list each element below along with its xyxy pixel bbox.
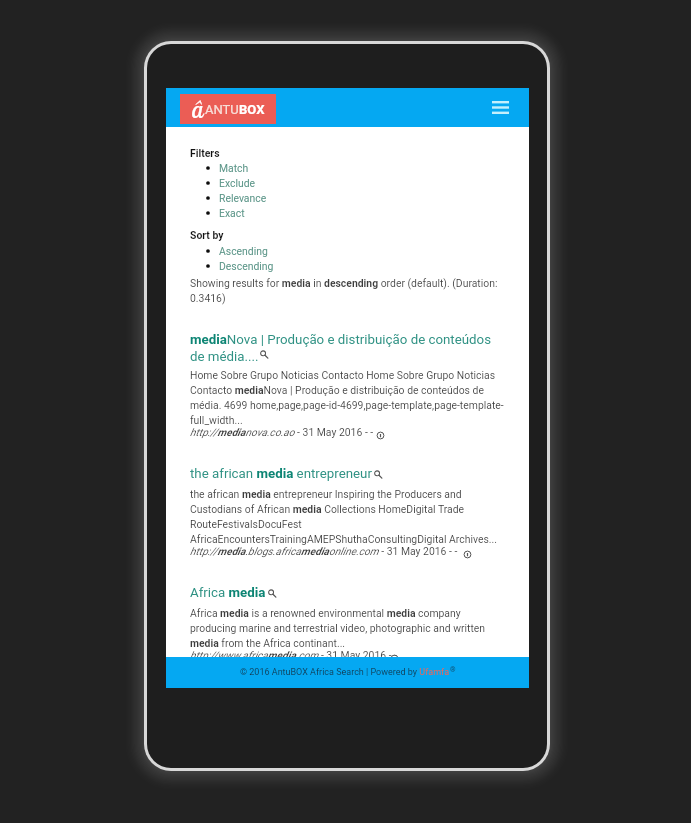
button[interactable]: Africa media	[190, 585, 505, 661]
staticText: http://www.africamedia.com - 31 May 2016…	[190, 649, 397, 661]
staticText: Filters	[190, 147, 220, 159]
staticText: Descending	[219, 260, 274, 272]
button[interactable]: Menu	[486, 93, 516, 123]
staticText: Africa media is a renowned environmental…	[190, 607, 505, 649]
staticText: Match	[219, 162, 249, 174]
staticText: Exact	[219, 207, 245, 219]
staticText: the african media entrepreneur	[190, 466, 372, 482]
staticText: Africa media	[190, 585, 266, 601]
staticText: ANTU	[205, 102, 239, 117]
button[interactable]: Exact	[190, 205, 505, 220]
staticText: Exclude	[219, 177, 256, 189]
staticText: Sort by	[190, 229, 224, 241]
staticText: the african media entrepreneur Inspiring…	[190, 488, 505, 545]
staticText: â	[192, 95, 204, 124]
button[interactable]: © 2016 AntuBOX Africa Search | Powered b…	[166, 657, 529, 688]
button[interactable]: Descending	[190, 258, 505, 273]
staticText: mediaNova | Produção e distribuição de c…	[190, 332, 505, 364]
staticText: Ascending	[219, 245, 268, 257]
staticText: BOX	[239, 102, 265, 117]
staticText: http://medianova.co.ao - 31 May 2016 - -	[190, 426, 374, 438]
button[interactable]: â	[180, 94, 276, 124]
staticText: Showing results for media in descending …	[190, 277, 505, 304]
button[interactable]: mediaNova | Produção e distribuição de c…	[190, 332, 505, 438]
staticText: Relevance	[219, 192, 267, 204]
staticText: ®	[450, 666, 456, 674]
staticText: Home Sobre Grupo Noticias Contacto Home …	[190, 369, 505, 426]
staticText: http://media.blogs.africamediaonline.com…	[190, 545, 458, 557]
button[interactable]: Ascending	[190, 243, 505, 258]
button[interactable]: Match	[190, 160, 505, 175]
button[interactable]: Relevance	[190, 190, 505, 205]
button[interactable]: Exclude	[190, 175, 505, 190]
staticText: © 2016 AntuBOX Africa Search | Powered b…	[240, 667, 450, 678]
button[interactable]: the african media entrepreneur	[190, 466, 505, 557]
